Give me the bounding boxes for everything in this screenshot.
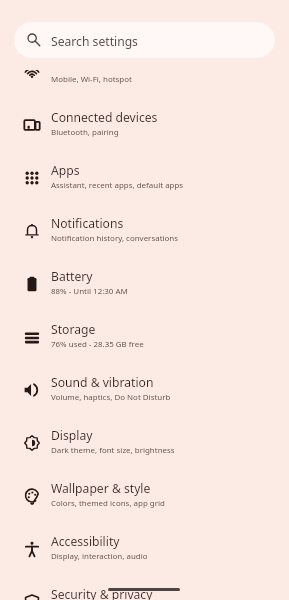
button[interactable]: Storage [0,322,289,375]
button[interactable]: Wallpaper & style [0,481,289,534]
staticText: Notifications [51,215,124,232]
staticText: Colors, themed icons, app grid [51,498,165,509]
staticText: Sound & vibration [51,374,154,391]
staticText: Mobile, Wi-Fi, hotspot [51,74,132,85]
button[interactable]: Network & internet [0,70,289,110]
staticText: Bluetooth, pairing [51,127,119,138]
staticText: Security & privacy [51,586,153,600]
staticText: Display [51,427,93,444]
button[interactable]: Accessibility [0,534,289,587]
button[interactable]: Apps [0,163,289,216]
staticText: Battery [51,268,93,285]
staticText: Wallpaper & style [51,480,151,497]
staticText: Notification history, conversations [51,233,179,244]
button[interactable]: Display [0,428,289,481]
staticText: 88% - Until 12:30 AM [51,286,128,297]
button[interactable]: Sound & vibration [0,375,289,428]
staticText: 76% used - 28.35 GB free [51,339,144,350]
staticText: Display, interaction, audio [51,551,148,562]
button[interactable]: Security & privacy [0,587,289,600]
staticText: Apps [51,162,80,179]
button[interactable]: Notifications [0,216,289,269]
button[interactable]: Search settings [14,22,275,58]
staticText: Dark theme, font size, brightness [51,445,175,456]
staticText: Assistant, recent apps, default apps [51,180,184,191]
button[interactable]: Battery [0,269,289,322]
staticText: Storage [51,321,96,338]
staticText: Volume, haptics, Do Not Disturb [51,392,171,403]
staticText: Connected devices [51,109,158,126]
staticText: Accessibility [51,533,120,550]
button[interactable]: Connected devices [0,110,289,163]
staticText: Search settings [51,33,138,50]
